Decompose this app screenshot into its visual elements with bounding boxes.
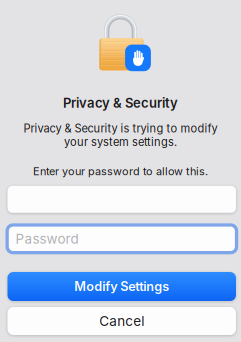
button[interactable]: Modify Settings [7,272,236,301]
staticText: Cancel [99,313,144,329]
staticText: Modify Settings [74,279,169,294]
button[interactable]: Cancel [7,307,236,335]
staticText: Password [15,231,78,247]
staticText: your system settings. [64,135,177,149]
staticText: Privacy & Security [63,95,178,111]
staticText: Privacy & Security is trying to modify [23,122,217,135]
staticText: Enter your password to allow this. [33,165,208,178]
